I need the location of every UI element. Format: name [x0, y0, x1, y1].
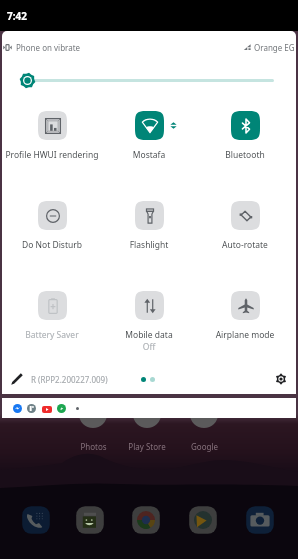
staticText: Google [191, 441, 218, 452]
button[interactable]: Auto-rotate [198, 193, 292, 265]
staticText: Profile HWUI rendering [5, 149, 99, 161]
staticText: Flashlight [102, 239, 196, 251]
button[interactable]: Mostafa [102, 103, 196, 175]
staticText: Do Not Disturb [5, 239, 99, 251]
staticText: 7:42 [7, 9, 27, 23]
staticText: R (RPP2.200227.009) [31, 374, 108, 385]
staticText: Photos [80, 441, 107, 452]
button[interactable]: Edit tiles [8, 370, 26, 388]
button[interactable] [245, 505, 275, 535]
button[interactable] [189, 399, 219, 429]
staticText: Airplane mode [198, 329, 292, 341]
button[interactable]: Airplane mode [198, 283, 292, 355]
button[interactable]: Battery Saver [5, 283, 99, 355]
button[interactable]: Mobile data [102, 283, 196, 355]
button[interactable] [188, 505, 218, 535]
button[interactable] [131, 505, 161, 535]
button[interactable]: Settings [272, 370, 290, 388]
button[interactable] [78, 399, 108, 429]
button[interactable]: Bluetooth [198, 103, 292, 175]
staticText: Orange EG [254, 42, 295, 53]
staticText: Mostafa [102, 149, 196, 161]
staticText: Battery Saver [5, 329, 99, 341]
button[interactable]: Flashlight [102, 193, 196, 265]
button[interactable] [21, 505, 51, 535]
staticText: Bluetooth [198, 149, 292, 161]
button[interactable]: Profile HWUI rendering [5, 103, 99, 175]
staticText: Mobile data [102, 329, 196, 341]
staticText: Phone on vibrate [16, 42, 81, 53]
staticText: Auto-rotate [198, 239, 292, 251]
button[interactable]: Do Not Disturb [5, 193, 99, 265]
staticText: Play Store [128, 441, 166, 452]
button[interactable] [75, 505, 105, 535]
button[interactable] [132, 399, 162, 429]
staticText: Off [102, 341, 196, 353]
